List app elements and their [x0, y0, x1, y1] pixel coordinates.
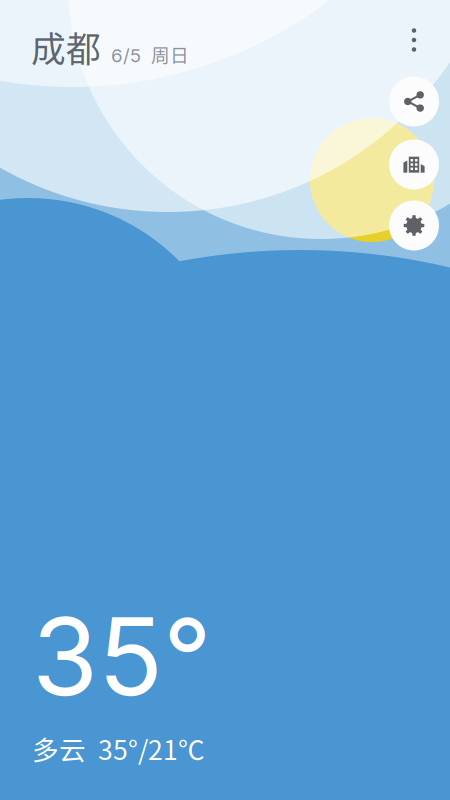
staticText: 35°: [32, 592, 212, 721]
button[interactable]: Settings: [388, 199, 440, 251]
staticText: 周日: [151, 41, 189, 68]
staticText: 6/5: [111, 44, 141, 67]
staticText: 成都: [31, 22, 101, 72]
staticText: 多云 35°/21℃: [32, 729, 205, 768]
button[interactable]: More options: [392, 13, 436, 67]
button[interactable]: Cities: [388, 138, 440, 190]
button[interactable]: Share: [388, 75, 440, 127]
